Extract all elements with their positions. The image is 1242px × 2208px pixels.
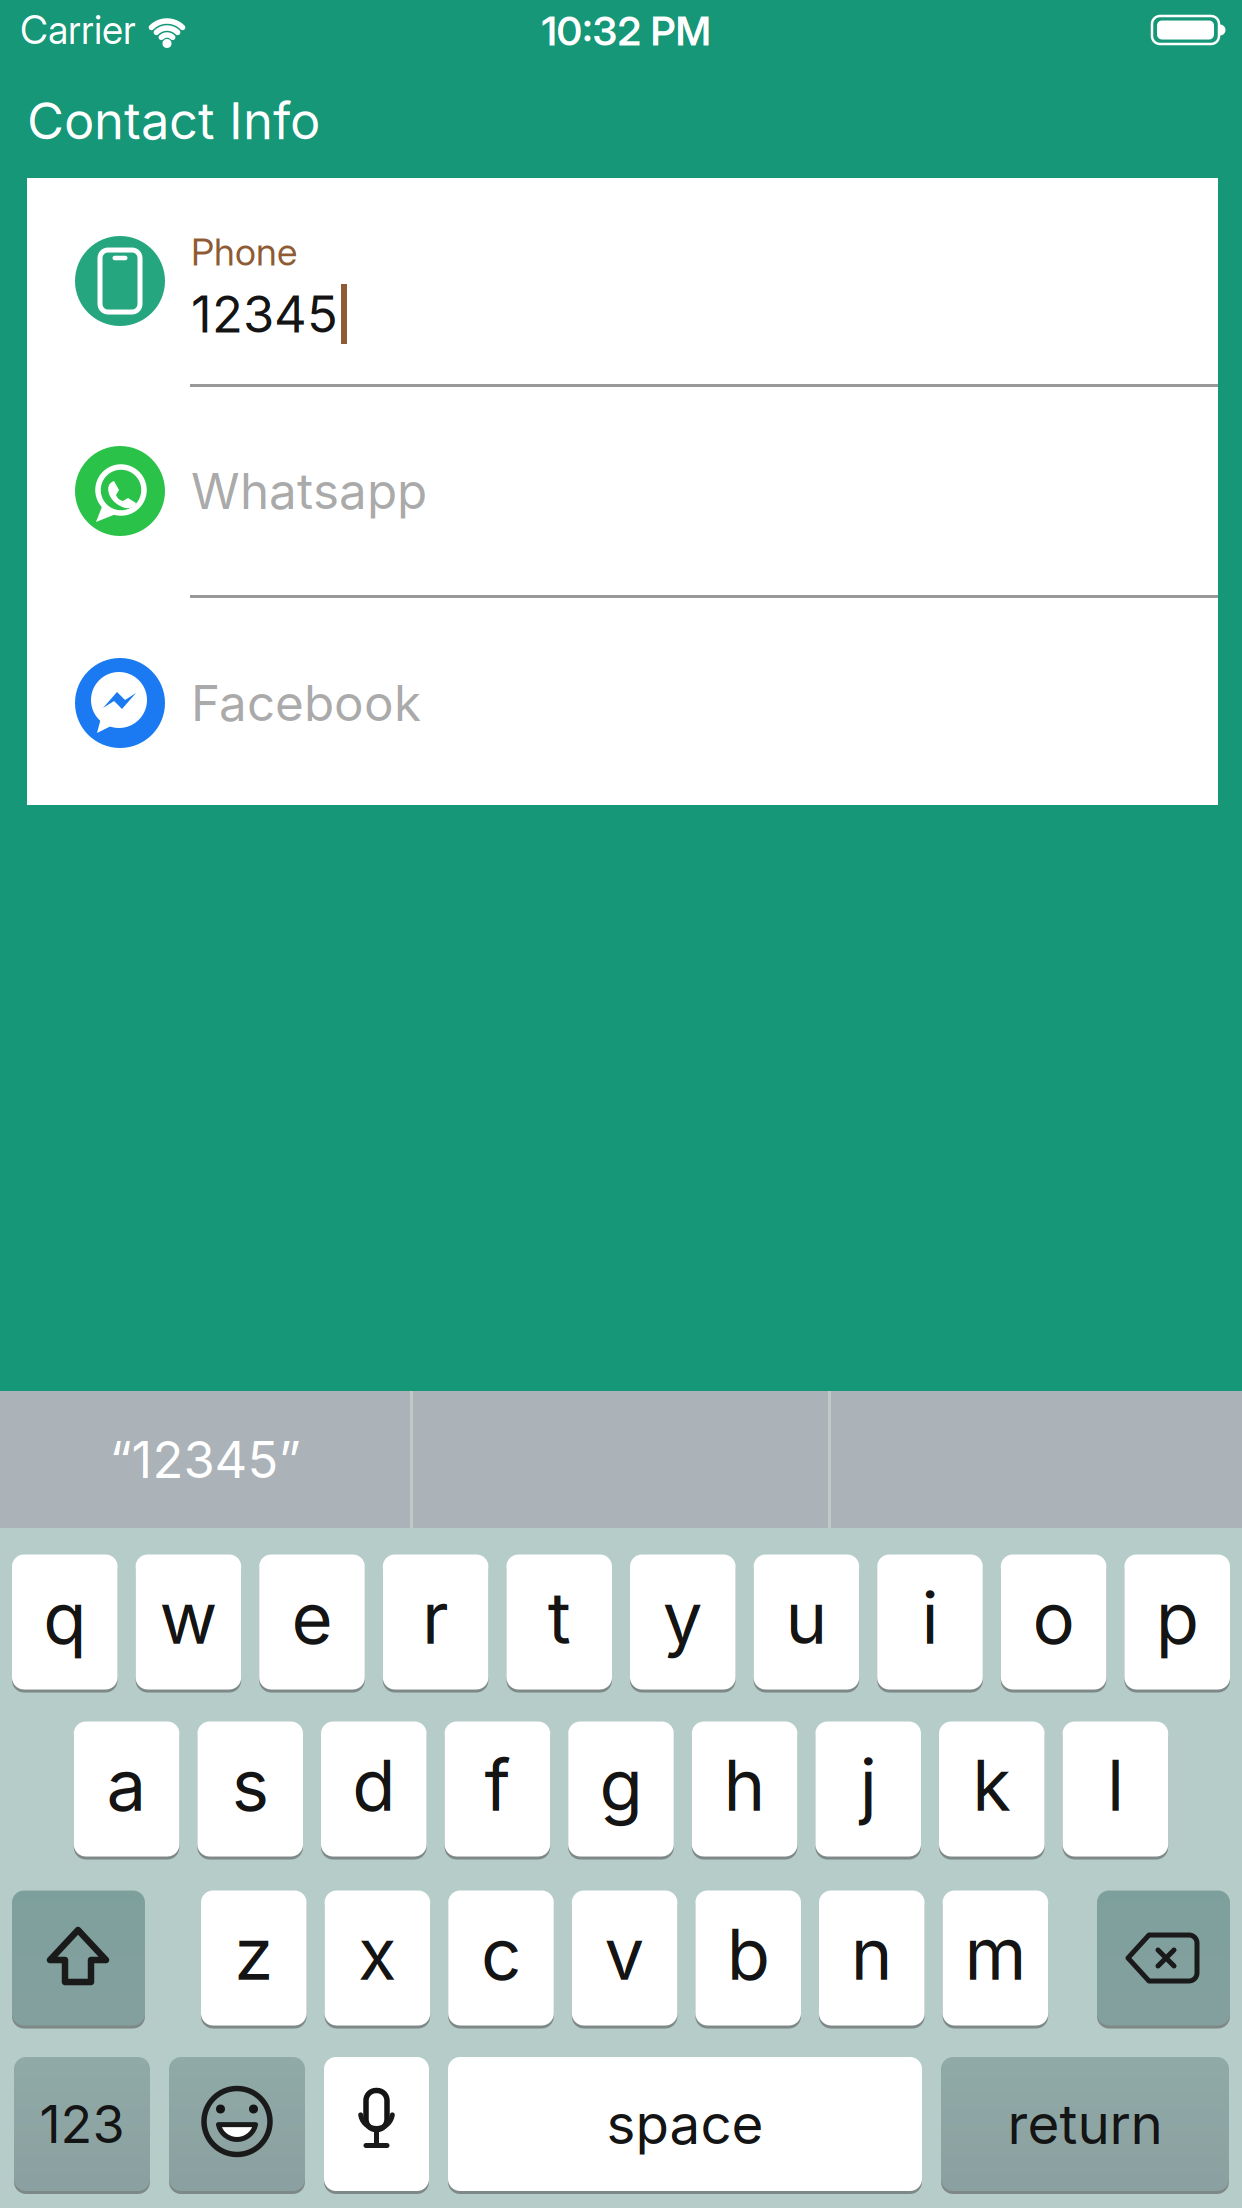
button[interactable]: m — [942, 1888, 1048, 2028]
button[interactable]: u — [753, 1552, 859, 1692]
button[interactable]: d — [321, 1719, 427, 1859]
staticText: i — [921, 1576, 938, 1660]
button[interactable]: v — [572, 1888, 678, 2028]
staticText: q — [43, 1576, 86, 1660]
staticText: c — [481, 1912, 521, 1996]
button[interactable]: h — [692, 1719, 798, 1859]
staticText: j — [860, 1743, 877, 1827]
button[interactable]: Facebook — [27, 598, 1218, 807]
staticText: 12345 — [191, 284, 338, 344]
button[interactable]: i — [877, 1552, 983, 1692]
staticText: g — [599, 1743, 642, 1827]
button[interactable] — [1097, 1888, 1230, 2028]
button[interactable]: Phone — [27, 178, 1218, 384]
staticText: l — [1107, 1743, 1124, 1827]
button[interactable]: x — [324, 1888, 430, 2028]
button[interactable]: t — [506, 1552, 612, 1692]
staticText: w — [159, 1576, 217, 1660]
button[interactable]: “12345” — [0, 1391, 410, 1528]
staticText: v — [605, 1912, 645, 1996]
staticText: Facebook — [191, 674, 421, 732]
staticText: h — [724, 1743, 766, 1827]
staticText: m — [964, 1912, 1026, 1996]
button[interactable]: n — [819, 1888, 925, 2028]
button[interactable]: a — [74, 1719, 180, 1859]
staticText: p — [1156, 1576, 1199, 1660]
staticText: r — [422, 1576, 449, 1660]
staticText: n — [851, 1912, 893, 1996]
staticText: “12345” — [109, 1430, 300, 1489]
staticText: 10:32 PM — [541, 7, 710, 55]
staticText: e — [291, 1576, 332, 1660]
button[interactable]: o — [1001, 1552, 1107, 1692]
button[interactable]: w — [135, 1552, 241, 1692]
staticText: o — [1033, 1576, 1075, 1660]
button[interactable] — [169, 2054, 305, 2193]
button[interactable]: s — [197, 1719, 303, 1859]
staticText: Whatsapp — [191, 462, 427, 520]
button[interactable]: return — [941, 2054, 1229, 2193]
button[interactable]: z — [201, 1888, 307, 2028]
button[interactable]: g — [568, 1719, 674, 1859]
button[interactable]: 123 — [14, 2054, 150, 2193]
button[interactable]: j — [815, 1719, 921, 1859]
staticText: b — [727, 1912, 770, 1996]
button[interactable]: Whatsapp — [27, 387, 1218, 595]
staticText: Contact Info — [27, 91, 320, 151]
button[interactable]: b — [695, 1888, 801, 2028]
staticText: a — [107, 1743, 147, 1827]
button[interactable] — [324, 2054, 429, 2193]
button[interactable]: r — [383, 1552, 489, 1692]
button[interactable]: q — [12, 1552, 118, 1692]
staticText: t — [548, 1576, 571, 1660]
staticText: u — [785, 1576, 827, 1660]
button[interactable] — [12, 1888, 145, 2028]
button[interactable]: l — [1062, 1719, 1168, 1859]
staticText: x — [358, 1912, 397, 1996]
staticText: d — [352, 1743, 395, 1827]
staticText: Carrier — [20, 7, 136, 53]
staticText: space — [606, 2092, 763, 2156]
staticText: return — [1007, 2092, 1162, 2156]
button[interactable]: p — [1124, 1552, 1230, 1692]
button[interactable]: e — [259, 1552, 365, 1692]
staticText: s — [232, 1743, 269, 1827]
staticText: y — [663, 1576, 703, 1660]
staticText: f — [484, 1743, 510, 1827]
button[interactable]: space — [448, 2054, 922, 2193]
button[interactable]: y — [630, 1552, 736, 1692]
staticText: Phone — [191, 230, 297, 274]
staticText: z — [234, 1912, 273, 1996]
staticText: k — [972, 1743, 1011, 1827]
button[interactable]: f — [444, 1719, 550, 1859]
button[interactable]: k — [939, 1719, 1045, 1859]
staticText: 123 — [39, 2093, 124, 2155]
button[interactable]: c — [448, 1888, 554, 2028]
